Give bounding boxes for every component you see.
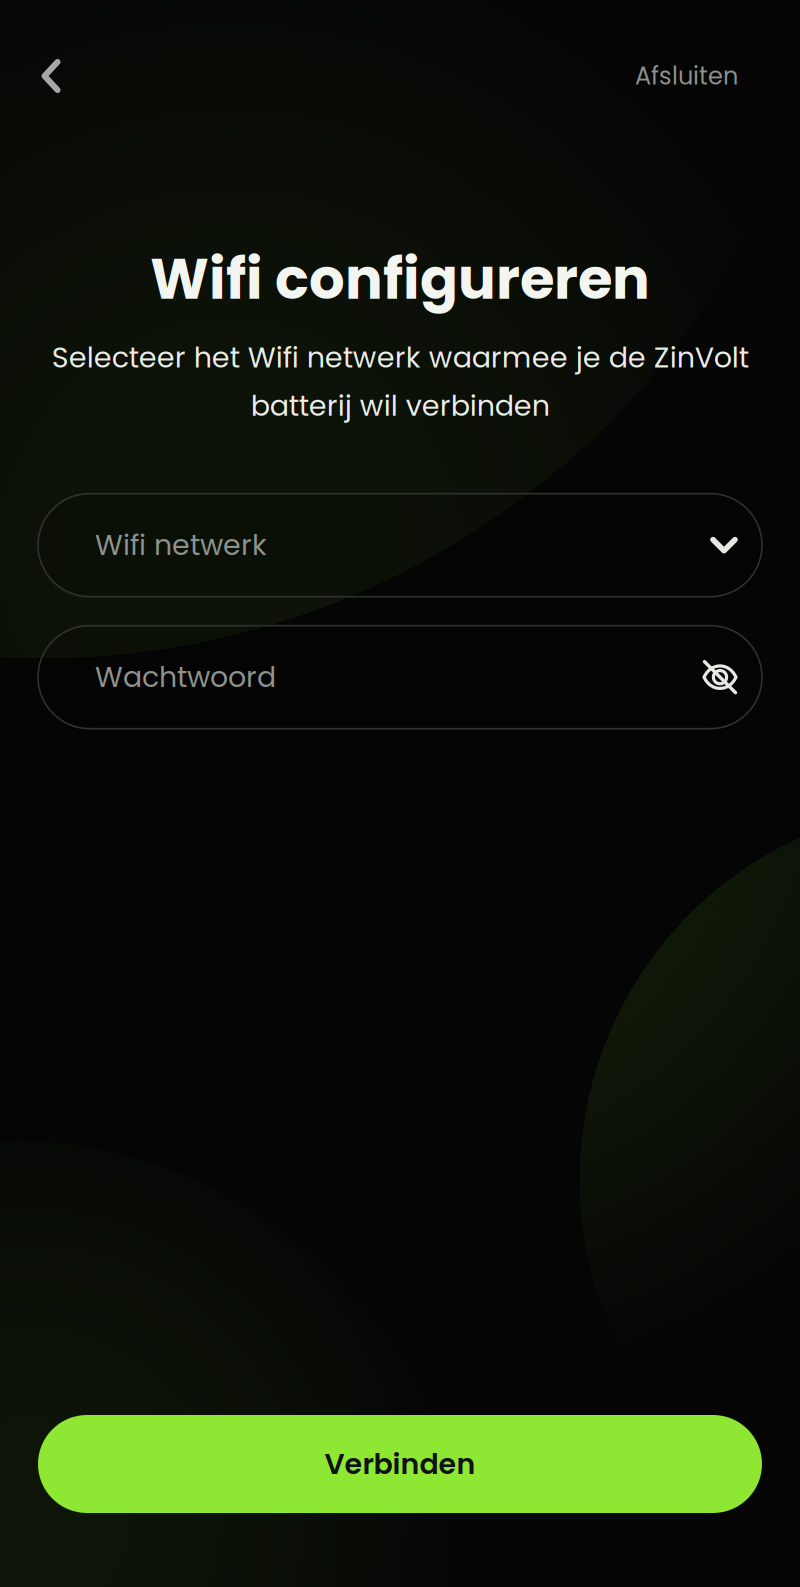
staticText: Selecteer het Wifi netwerk waarmee je de… [51, 337, 748, 426]
button[interactable]: Wifi netwerk [38, 494, 762, 597]
staticText: Verbinden [324, 1444, 475, 1484]
button[interactable]: Terug [23, 46, 79, 106]
button[interactable]: Afsluiten [635, 46, 738, 106]
staticText: Afsluiten [635, 59, 738, 93]
button[interactable]: Wachtwoord [38, 626, 762, 729]
staticText: Wifi configureren [150, 240, 650, 318]
button[interactable]: Verbinden [38, 1415, 762, 1513]
staticText: Wifi netwerk [95, 525, 267, 565]
staticText: Wachtwoord [95, 657, 276, 697]
